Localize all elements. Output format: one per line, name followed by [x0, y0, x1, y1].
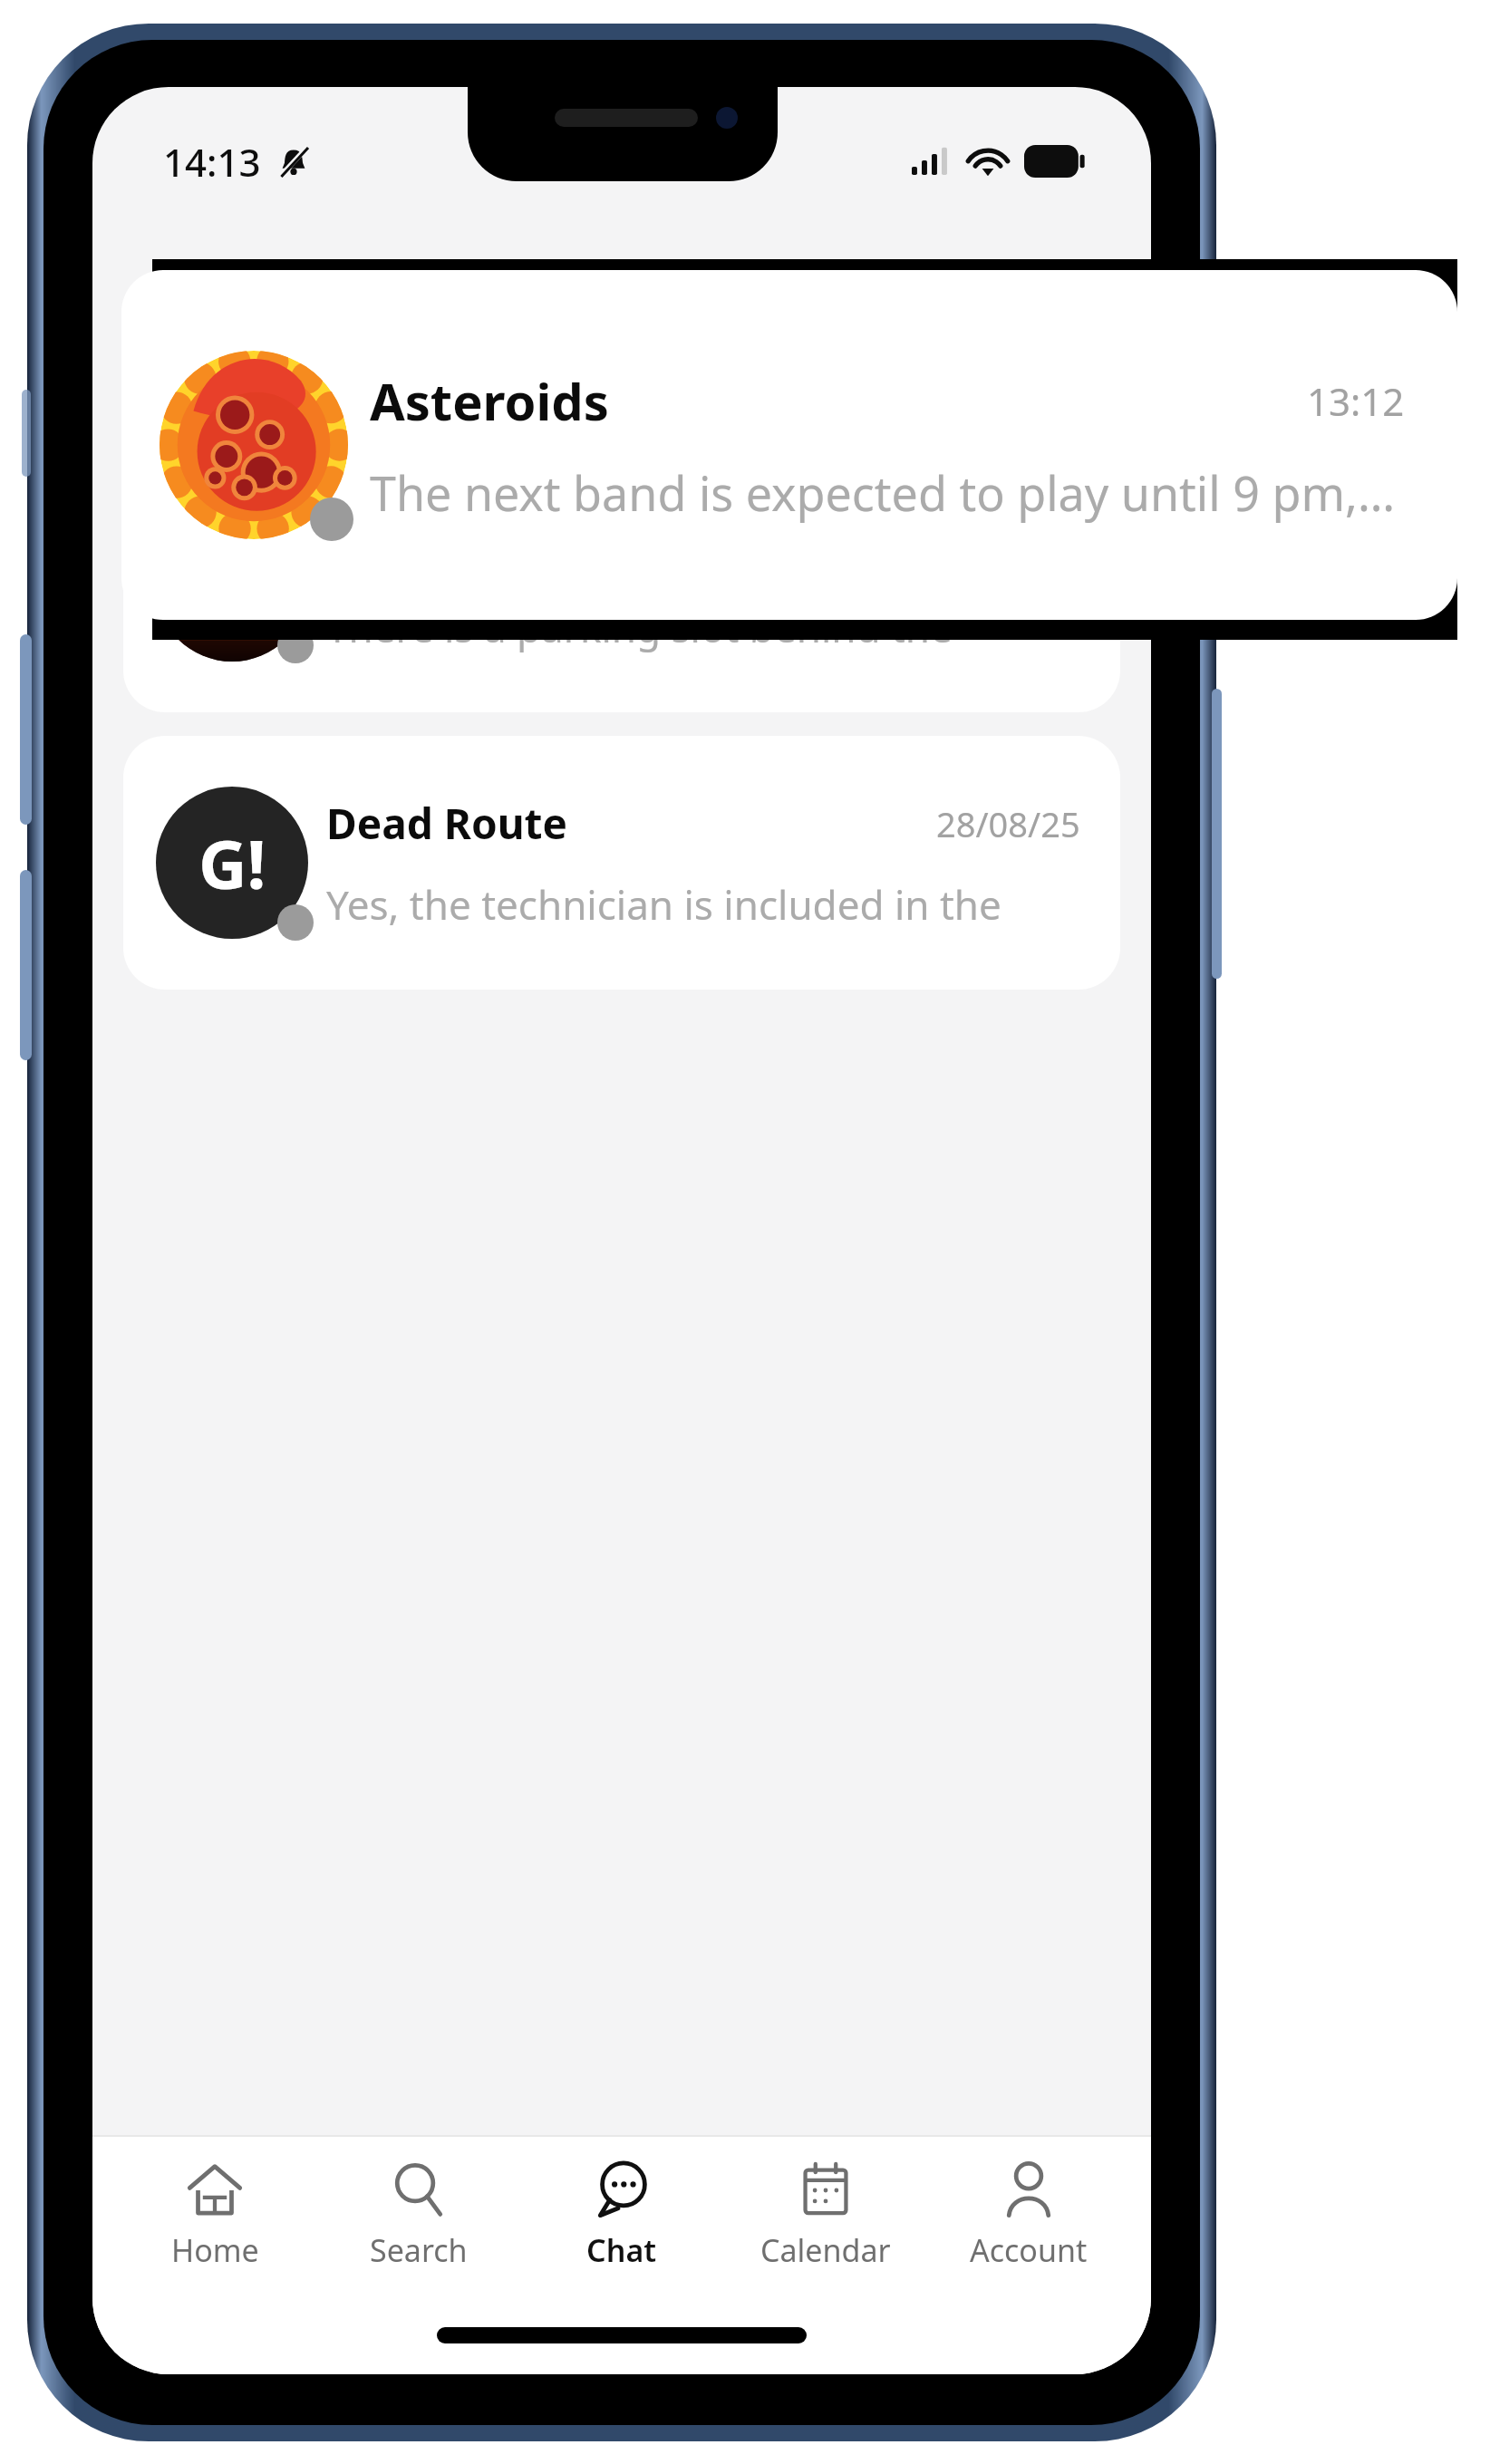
staticText: Search: [370, 2229, 468, 2271]
staticText: The next band is expected to play until …: [370, 460, 1396, 525]
staticText: Calendar: [760, 2229, 891, 2271]
staticText: Account: [970, 2229, 1088, 2271]
button[interactable]: Hell Ballerinas: [123, 459, 1120, 712]
staticText: Yes, the technician is included in the p…: [326, 877, 1080, 932]
staticText: Chat: [586, 2229, 657, 2271]
staticText: 13:12: [1307, 375, 1405, 427]
button[interactable]: Chat: [523, 2157, 721, 2275]
staticText: Dead Route: [326, 795, 567, 852]
staticText: Hell Ballerinas: [326, 517, 625, 575]
staticText: Home: [171, 2229, 259, 2271]
button[interactable]: Search: [320, 2157, 518, 2275]
button[interactable]: Asteroids: [121, 270, 1457, 620]
staticText: There is a parking slot behind the venue…: [326, 600, 1080, 654]
button[interactable]: G!: [123, 736, 1120, 990]
button[interactable]: Account: [930, 2157, 1127, 2275]
staticText: 28/08/25: [936, 800, 1080, 847]
staticText: 14:13: [163, 136, 261, 188]
staticText: G!: [198, 817, 266, 909]
staticText: Asteroids: [370, 366, 609, 435]
button[interactable]: Home: [116, 2157, 314, 2275]
button[interactable]: Calendar: [727, 2157, 924, 2275]
